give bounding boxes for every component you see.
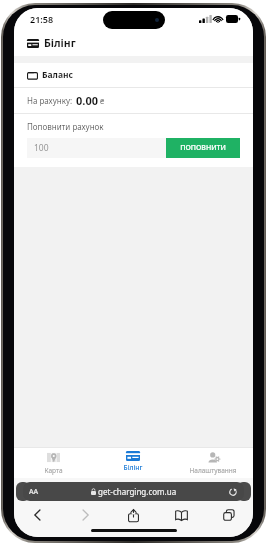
button[interactable]: AA	[23, 482, 244, 501]
staticText: На рахунку:	[27, 95, 73, 106]
staticText: 100	[34, 142, 49, 154]
staticText: ₴	[100, 96, 105, 106]
staticText: Поповнити рахунок	[27, 121, 104, 132]
button[interactable]: Білінг	[93, 448, 173, 478]
staticText: 0.00	[76, 93, 98, 108]
staticText: get-charging.com.ua	[98, 486, 177, 497]
staticText: 21:58	[30, 13, 54, 25]
button[interactable]: Bookmarks	[157, 504, 205, 526]
button[interactable]: Share	[109, 504, 157, 526]
button[interactable]: 100	[27, 138, 166, 158]
staticText: Білінг	[123, 463, 143, 472]
button[interactable]: Forward	[61, 504, 109, 526]
staticText: AA	[29, 487, 39, 497]
button[interactable]: Back	[14, 504, 61, 526]
button[interactable]: Налаштування	[173, 448, 253, 478]
button[interactable]: Білінг	[14, 30, 253, 56]
staticText: Налаштування	[189, 466, 237, 475]
button[interactable]: Reload page	[228, 487, 238, 497]
staticText: ПОПОВНИТИ	[180, 143, 226, 153]
button[interactable]: Карта	[14, 448, 93, 478]
staticText: Баланс	[42, 69, 73, 81]
button[interactable]: ПОПОВНИТИ	[166, 138, 240, 158]
button[interactable]: Tabs	[205, 504, 253, 526]
staticText: Карта	[44, 466, 63, 475]
staticText: Білінг	[44, 36, 76, 50]
